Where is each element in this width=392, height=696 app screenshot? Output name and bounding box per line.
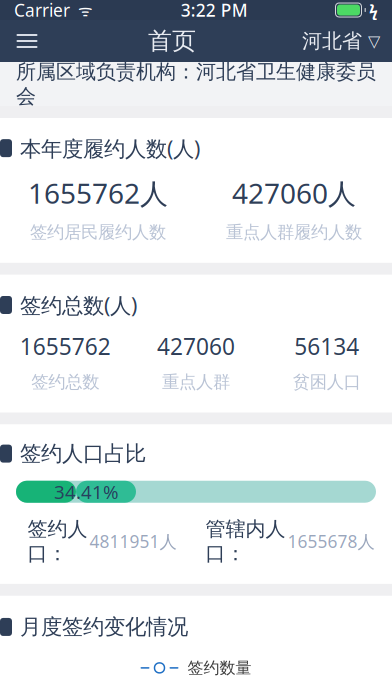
staticText: 427060 xyxy=(157,331,235,361)
button[interactable]: 河北省 xyxy=(290,20,392,62)
staticText: 1655678人 xyxy=(287,530,374,553)
staticText: 首页 xyxy=(148,26,196,56)
button[interactable]: Menu xyxy=(0,20,54,62)
staticText: 34.41% xyxy=(54,479,119,504)
staticText: 3:22 PM xyxy=(181,0,248,21)
staticText: 重点人群履约人数 xyxy=(226,221,362,243)
staticText: 重点人群 xyxy=(162,371,230,392)
staticText: 河北省 xyxy=(302,29,362,53)
staticText: 月度签约变化情况 xyxy=(20,614,188,640)
staticText: ▽ xyxy=(368,32,380,50)
staticText: 签约人口： xyxy=(27,517,87,566)
staticText: 贫困人口 xyxy=(293,371,361,392)
staticText: 1655762人 xyxy=(28,174,168,211)
staticText: 56134 xyxy=(294,331,359,361)
staticText: 签约总数(人) xyxy=(20,291,137,319)
staticText: 4811951人 xyxy=(89,530,176,553)
staticText: 1655762 xyxy=(20,331,111,361)
staticText: 签约总数 xyxy=(31,371,99,392)
staticText: 本年度履约人数(人) xyxy=(20,134,200,162)
staticText: 签约居民履约人数 xyxy=(30,221,166,243)
staticText: 所属区域负责机构：河北省卫生健康委员会 xyxy=(16,59,376,108)
staticText: ᯤ xyxy=(70,0,93,21)
staticText: 427060人 xyxy=(232,174,356,211)
staticText: ϟ xyxy=(369,0,378,21)
staticText: Carrier xyxy=(14,0,70,21)
staticText: 签约数量 xyxy=(187,658,251,678)
staticText: 签约人口占比 xyxy=(20,440,146,467)
staticText: 管辖内人口： xyxy=(205,517,285,566)
